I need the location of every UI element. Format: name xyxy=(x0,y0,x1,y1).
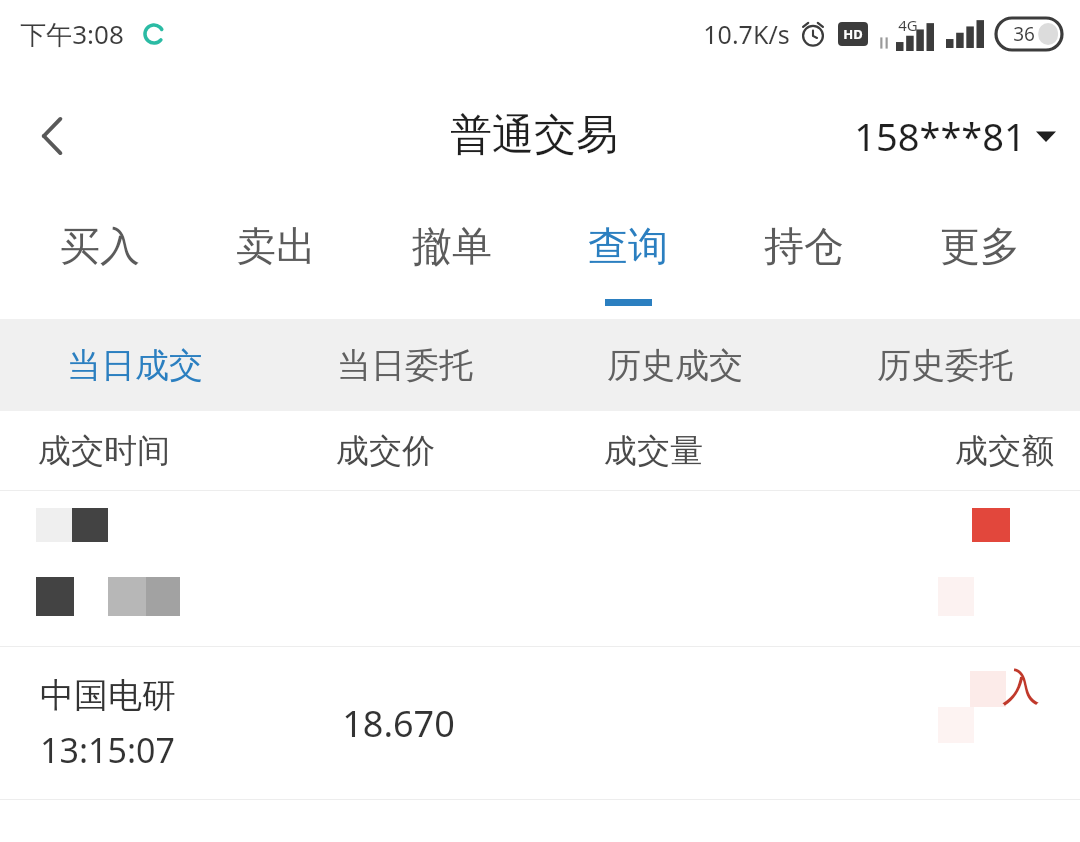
button[interactable]: 中国电研 xyxy=(0,647,1080,799)
staticText: HD xyxy=(843,25,863,43)
button[interactable] xyxy=(0,491,1080,646)
button[interactable]: 当日成交 xyxy=(0,319,270,411)
button[interactable]: 买入 xyxy=(12,203,188,319)
staticText: 普通交易 xyxy=(450,109,618,162)
staticText: 历史委托 xyxy=(877,344,1013,387)
staticText: 卖出 xyxy=(236,221,316,271)
staticText: 18.670 xyxy=(342,699,455,748)
staticText: 下午3:08 xyxy=(20,16,124,52)
button[interactable]: 历史成交 xyxy=(540,319,810,411)
button[interactable]: 历史委托 xyxy=(810,319,1080,411)
staticText: 入 xyxy=(1002,663,1040,711)
staticText: 持仓 xyxy=(764,221,844,271)
staticText: 36 xyxy=(1013,21,1035,47)
button[interactable]: 撤单 xyxy=(364,203,540,319)
button[interactable]: 持仓 xyxy=(716,203,892,319)
staticText: 成交时间 xyxy=(38,430,170,472)
staticText: 成交价 xyxy=(336,430,435,472)
button[interactable]: 卖出 xyxy=(188,203,364,319)
staticText: 更多 xyxy=(940,221,1020,271)
button[interactable]: 当日委托 xyxy=(270,319,540,411)
staticText: 成交量 xyxy=(604,430,703,472)
button[interactable]: 158***81 xyxy=(854,110,1056,162)
staticText: 10.7K/s xyxy=(703,17,790,51)
staticText: 历史成交 xyxy=(607,344,743,387)
staticText: 查询 xyxy=(588,221,668,271)
staticText: 成交额 xyxy=(955,430,1054,472)
button[interactable]: 查询 xyxy=(540,203,716,319)
button[interactable]: Back xyxy=(14,97,92,175)
staticText: 中国电研 xyxy=(40,674,176,717)
staticText: 买入 xyxy=(60,221,140,271)
staticText: 4G xyxy=(898,15,918,35)
staticText: 13:15:07 xyxy=(40,727,175,773)
staticText: 当日成交 xyxy=(67,344,203,387)
button[interactable]: 更多 xyxy=(892,203,1068,319)
staticText: 撤单 xyxy=(412,221,492,271)
staticText: 158***81 xyxy=(854,110,1026,162)
staticText: 当日委托 xyxy=(337,344,473,387)
